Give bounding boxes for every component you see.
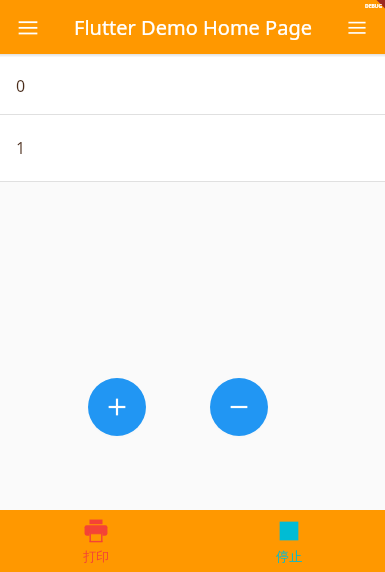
button[interactable]: 0 — [0, 57, 385, 114]
staticText: 1 — [16, 137, 26, 159]
staticText: Flutter Demo Home Page — [74, 14, 312, 41]
staticText: DEBUG — [365, 3, 383, 10]
button[interactable]: Decrement — [210, 378, 268, 436]
button[interactable]: 打印 — [0, 510, 192, 572]
button[interactable]: Open navigation menu — [8, 7, 48, 47]
staticText: 打印 — [83, 548, 109, 564]
button[interactable]: More options menu — [337, 7, 377, 47]
button[interactable]: 1 — [0, 115, 385, 181]
staticText: 0 — [16, 75, 26, 97]
staticText: 停止 — [276, 548, 302, 564]
button[interactable]: Increment — [88, 378, 146, 436]
button[interactable]: 停止 — [192, 510, 385, 572]
